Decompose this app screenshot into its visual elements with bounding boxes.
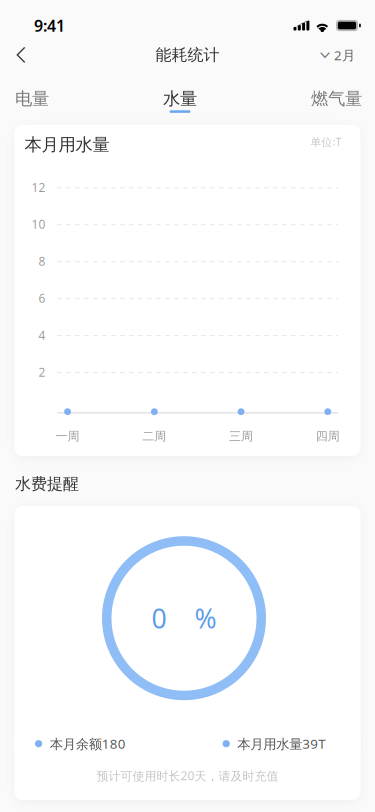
staticText: 一周 [56,429,80,443]
staticText: 本月用水量39T [237,735,325,752]
staticText: 本月余额180 [50,735,126,752]
staticText: 二周 [142,429,166,443]
staticText: 9:41 [34,15,65,36]
staticText: 12 [31,179,45,195]
staticText: 0 % [151,600,216,636]
staticText: 2月 [334,46,355,64]
staticText: 水量 [163,88,197,109]
button[interactable]: 燃气量 [311,82,362,116]
staticText: 燃气量 [311,88,362,109]
staticText: 本月用水量 [24,134,109,155]
button[interactable]: 2月 [320,36,375,74]
staticText: 电量 [15,88,49,109]
staticText: 单位:T [310,135,341,149]
staticText: 水费提醒 [15,474,79,494]
staticText: 能耗统计 [155,45,219,65]
button[interactable]: 电量 [15,82,49,116]
staticText: 10 [31,216,45,232]
button[interactable]: 返回 [0,36,42,74]
staticText: 4 [38,327,45,343]
staticText: 2 [38,364,45,380]
staticText: 预计可使用时长20天，请及时充值 [96,768,278,784]
button[interactable]: 水量 [163,82,197,116]
staticText: 6 [38,290,45,306]
staticText: 8 [38,253,45,269]
staticText: 三周 [229,429,253,443]
staticText: 四周 [316,429,340,443]
